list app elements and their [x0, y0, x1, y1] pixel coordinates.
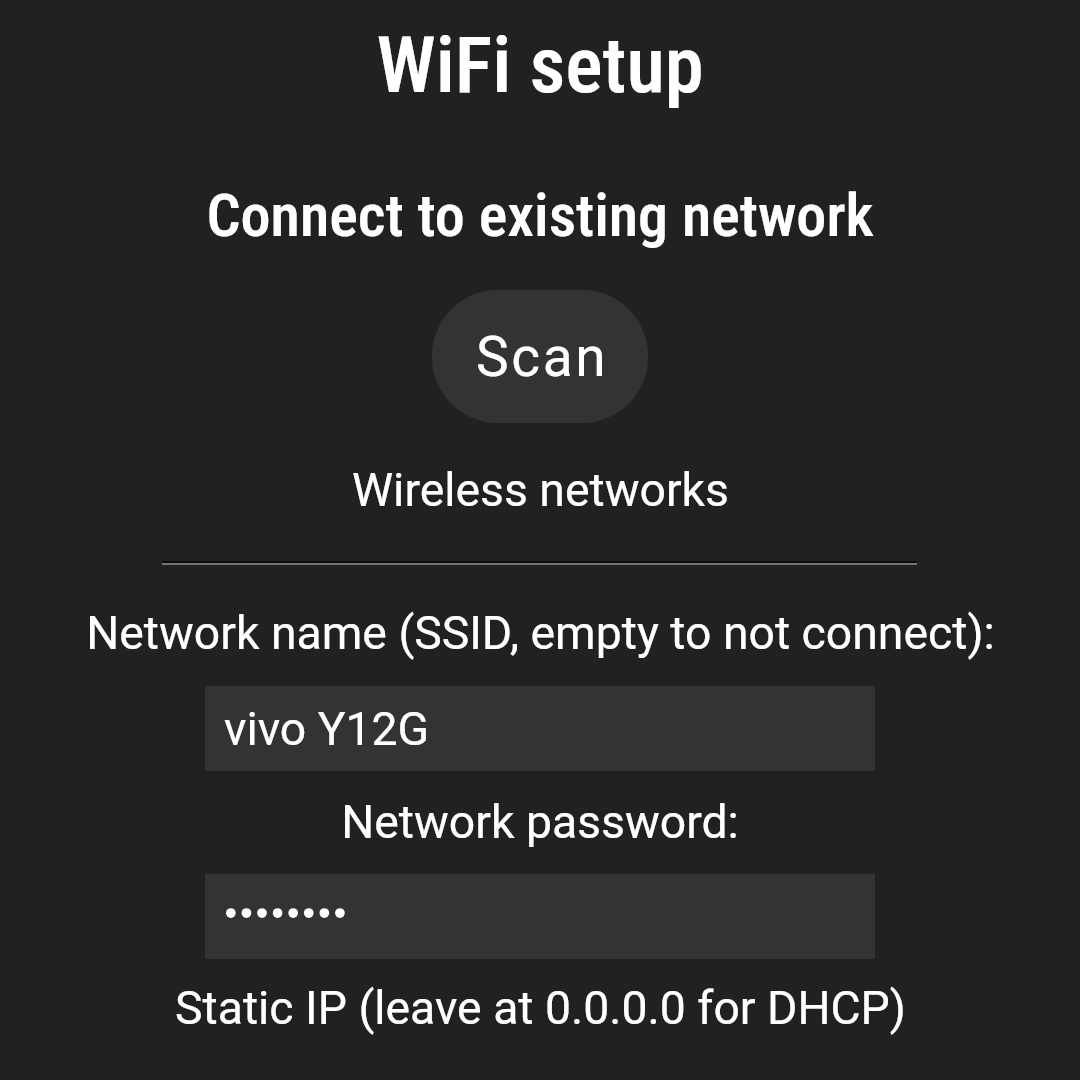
staticText: vivo Y12G	[224, 702, 430, 756]
staticText: Network password:	[341, 795, 739, 849]
staticText: Scan	[476, 325, 609, 389]
staticText: Static IP (leave at 0.0.0.0 for DHCP)	[175, 981, 906, 1035]
button[interactable]: Network name input	[205, 686, 875, 771]
staticText: Wireless networks	[352, 463, 729, 517]
staticText: Network name (SSID, empty to not connect…	[86, 606, 995, 660]
staticText: WiFi setup	[376, 19, 704, 111]
button[interactable]: Network password input	[205, 874, 875, 959]
button[interactable]: Scan	[432, 290, 648, 423]
staticText: Connect to existing network	[206, 180, 874, 250]
